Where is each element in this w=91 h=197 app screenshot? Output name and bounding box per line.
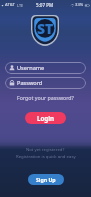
button[interactable]: Forgot your password? [13,93,78,102]
staticText: 33% [75,2,84,8]
button[interactable]: Username [5,62,86,74]
staticText: Registration is quick and easy [16,153,76,159]
staticText: AT&T [5,2,15,8]
staticText: 5:07 PM [36,2,54,8]
staticText: ST [37,19,54,38]
staticText: Login [37,114,55,122]
other: ST logo [31,15,59,46]
button[interactable]: Password [5,77,86,89]
staticText: Sign Up [36,176,56,183]
button[interactable]: Login [25,112,66,124]
staticText: Password [17,79,43,87]
staticText: LTE [17,3,24,8]
staticText: Username [17,64,45,72]
staticText: Not yet registered? [26,146,65,152]
button[interactable]: Sign Up [28,174,64,185]
